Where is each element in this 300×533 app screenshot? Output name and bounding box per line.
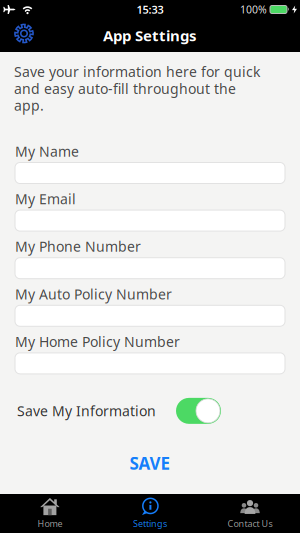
button[interactable]: Settings (100, 494, 200, 533)
button[interactable]: My Home Policy Number (15, 353, 285, 374)
button[interactable]: My Email (15, 210, 285, 231)
staticText: My Auto Policy Number (15, 285, 172, 303)
staticText: Save My Information (17, 402, 156, 420)
staticText: My Home Policy Number (15, 332, 180, 351)
staticText: Save your information here for quick and… (14, 63, 260, 114)
button[interactable]: My Name (15, 162, 285, 183)
staticText: Home (37, 517, 62, 529)
staticText: 15:33 (136, 2, 163, 17)
staticText: Settings (133, 517, 167, 529)
button[interactable]: Save My Information (176, 398, 221, 424)
button[interactable]: My Phone Number (15, 258, 285, 279)
button[interactable]: Contact Us (200, 494, 300, 533)
button[interactable]: SAVE (129, 452, 170, 474)
staticText: SAVE (129, 452, 170, 474)
button[interactable]: Home (0, 494, 100, 533)
staticText: 100% (240, 2, 267, 16)
button[interactable]: Settings (0, 25, 34, 45)
staticText: My Phone Number (15, 237, 141, 256)
button[interactable]: My Auto Policy Number (15, 305, 285, 326)
staticText: Contact Us (227, 517, 272, 529)
staticText: App Settings (103, 25, 197, 45)
staticText: My Name (15, 142, 79, 160)
staticText: My Email (15, 189, 76, 208)
